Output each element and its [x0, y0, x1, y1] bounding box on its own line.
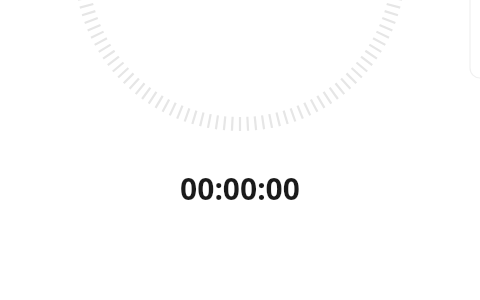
other: Timer dial [0, 0, 480, 300]
button[interactable]: 00:00:00 [0, 0, 480, 300]
staticText: 00:00:00 [180, 168, 300, 209]
